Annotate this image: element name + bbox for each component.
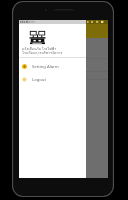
staticText: Logout (32, 77, 46, 83)
staticText: Setting Alarm (32, 64, 59, 70)
button[interactable]: Setting Alarm (19, 61, 86, 72)
staticText: โรงเรียนการบริหารจัดการ (22, 50, 63, 56)
button[interactable]: Logout (19, 74, 86, 85)
button[interactable] (19, 24, 108, 38)
staticText: แจ้งเตือนภัย โรงไฟฟ้า (22, 46, 57, 52)
